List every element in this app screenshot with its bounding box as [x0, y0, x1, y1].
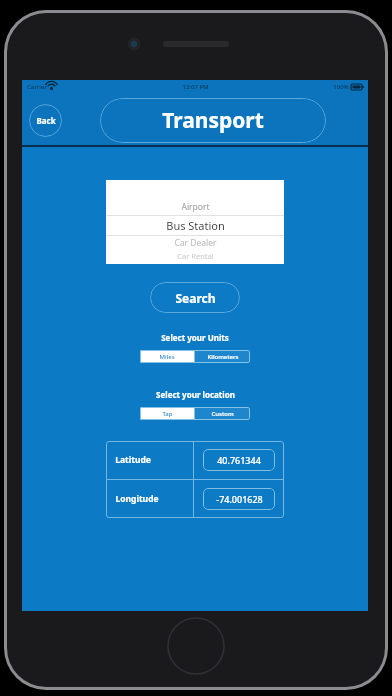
staticText: 100%: [333, 83, 349, 91]
button[interactable]: Custom: [195, 407, 250, 420]
button[interactable]: Miles: [140, 350, 194, 363]
staticText: Car Rental: [177, 251, 214, 261]
staticText: Latitude: [115, 454, 151, 466]
staticText: Custom: [211, 410, 234, 418]
staticText: 12:07 PM: [182, 83, 209, 91]
button[interactable]: Search: [150, 282, 240, 313]
button[interactable]: Kilometers: [195, 350, 250, 363]
button[interactable]: Tap: [140, 407, 194, 420]
staticText: Tap: [162, 410, 173, 418]
staticText: 40.761344: [217, 454, 261, 466]
staticText: Airport: [181, 201, 210, 213]
button[interactable]: Latitude: [106, 441, 284, 479]
staticText: Miles: [159, 353, 175, 361]
button[interactable]: Longitude: [106, 480, 284, 518]
button[interactable]: Back: [29, 104, 62, 137]
staticText: Select your Units: [161, 332, 229, 343]
staticText: Bus Station: [166, 218, 225, 233]
staticText: Transport: [162, 106, 264, 135]
button[interactable]: Transport: [100, 98, 326, 143]
staticText: Carrier: [27, 83, 47, 91]
staticText: Back: [36, 115, 56, 126]
staticText: Kilometers: [207, 353, 239, 361]
staticText: Longitude: [115, 493, 159, 505]
staticText: Car Dealer: [174, 237, 217, 249]
staticText: -74.001628: [216, 493, 263, 505]
staticText: Select your location: [156, 389, 235, 400]
staticText: Search: [175, 290, 216, 306]
